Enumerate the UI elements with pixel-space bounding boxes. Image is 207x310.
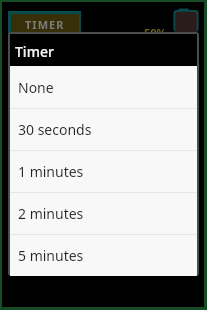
staticText: 50% xyxy=(144,25,167,40)
button[interactable]: 2 minutes xyxy=(10,193,197,234)
other: Battery xyxy=(173,8,199,32)
button[interactable]: 5 minutes xyxy=(10,235,197,276)
button[interactable]: None xyxy=(10,66,197,108)
button[interactable]: TIMER xyxy=(11,14,79,34)
button[interactable]: 30 seconds xyxy=(10,109,197,150)
staticText: 5 minutes xyxy=(18,246,84,265)
button[interactable]: 1 minutes xyxy=(10,151,197,192)
staticText: 30 seconds xyxy=(18,120,92,139)
staticText: Timer xyxy=(15,42,54,61)
staticText: 2 minutes xyxy=(18,204,84,223)
staticText: TIMER xyxy=(25,17,65,32)
staticText: None xyxy=(18,78,54,97)
staticText: 1 minutes xyxy=(18,162,84,181)
